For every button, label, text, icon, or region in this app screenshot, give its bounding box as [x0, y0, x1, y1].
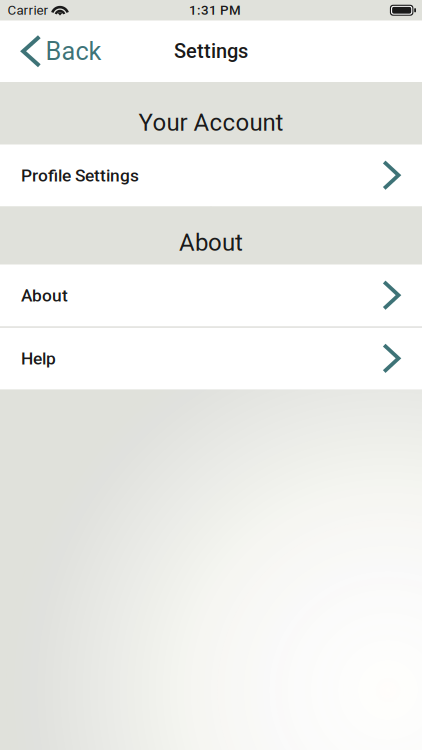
staticText: About	[179, 228, 243, 256]
button[interactable]: Back	[0, 20, 115, 82]
button[interactable]: Profile Settings	[0, 144, 422, 206]
staticText: Carrier	[7, 2, 48, 18]
staticText: 1:31 PM	[189, 2, 241, 18]
staticText: Help	[21, 348, 56, 369]
button[interactable]: About	[0, 264, 422, 326]
staticText: Your Account	[138, 108, 283, 136]
staticText: Profile Settings	[21, 165, 139, 186]
staticText: About	[21, 285, 68, 306]
staticText: Back	[45, 36, 101, 66]
staticText: Settings	[174, 39, 248, 63]
button[interactable]: Help	[0, 328, 422, 389]
